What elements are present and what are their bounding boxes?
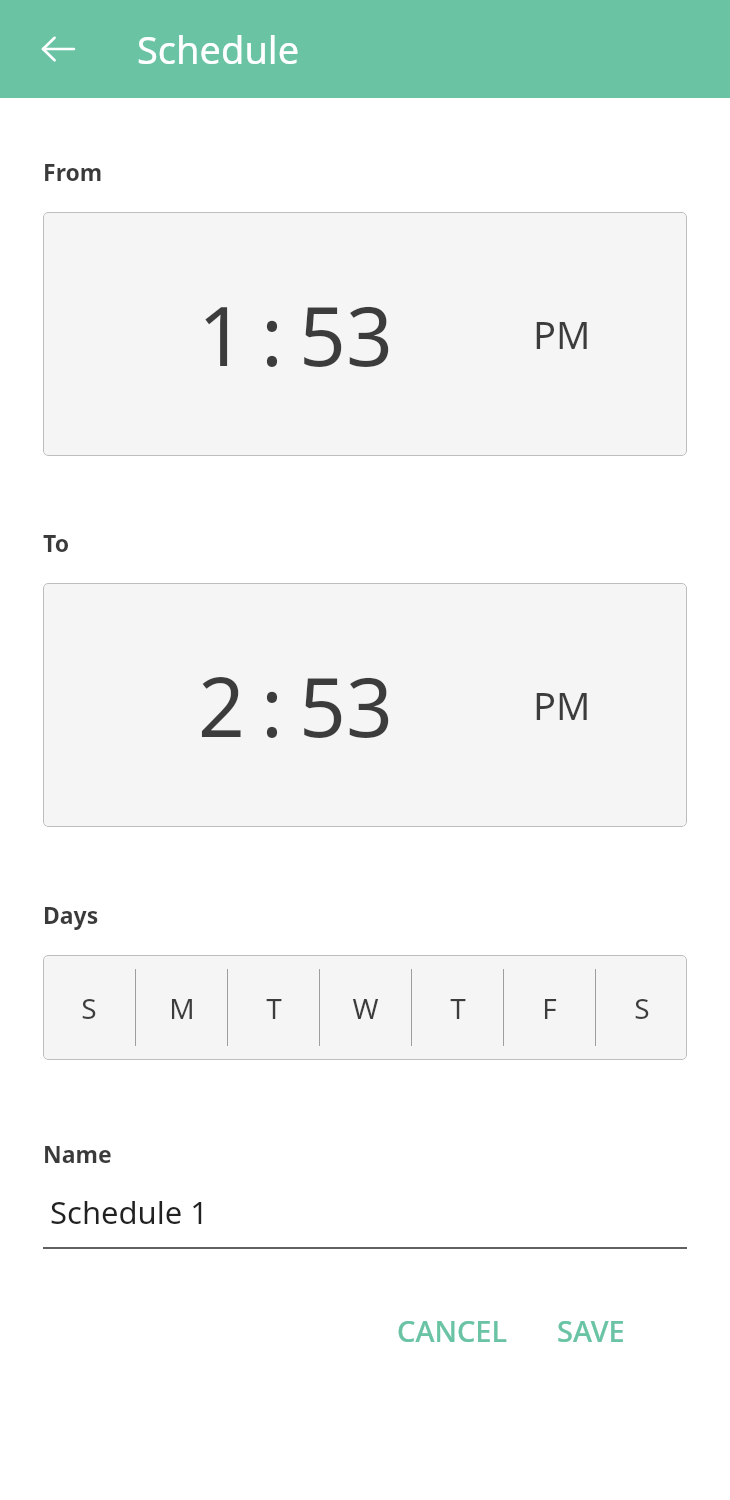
button[interactable]: SAVE	[539, 1297, 643, 1364]
staticText: T	[450, 989, 466, 1027]
staticText: PM	[533, 308, 591, 360]
staticText: S	[634, 989, 650, 1027]
button[interactable]: W	[320, 955, 411, 1060]
staticText: W	[352, 989, 379, 1027]
staticText: F	[542, 989, 557, 1027]
staticText: T	[266, 989, 282, 1027]
staticText: 1	[198, 278, 245, 390]
staticText: PM	[533, 679, 591, 731]
button[interactable]: Schedule 1	[43, 1191, 687, 1249]
staticText: To	[43, 527, 70, 558]
staticText: 2	[198, 649, 245, 761]
staticText: Schedule 1	[50, 1191, 209, 1233]
button[interactable]: 2	[43, 583, 687, 827]
button[interactable]: Back	[28, 19, 88, 79]
button[interactable]: M	[136, 955, 227, 1060]
button[interactable]: S	[596, 955, 687, 1060]
staticText: From	[43, 156, 103, 187]
staticText: Schedule	[137, 23, 300, 75]
staticText: S	[81, 989, 97, 1027]
staticText: 53	[299, 649, 393, 761]
staticText: Name	[43, 1138, 112, 1169]
staticText: CANCEL	[397, 1311, 507, 1350]
button[interactable]: T	[412, 955, 503, 1060]
button[interactable]: CANCEL	[379, 1297, 525, 1364]
button[interactable]: F	[504, 955, 595, 1060]
staticText: :	[261, 649, 283, 761]
button[interactable]: T	[228, 955, 319, 1060]
button[interactable]: 1	[43, 212, 687, 456]
staticText: SAVE	[557, 1311, 625, 1350]
staticText: :	[261, 278, 283, 390]
staticText: Days	[43, 899, 99, 930]
button[interactable]: S	[43, 955, 135, 1060]
staticText: 53	[299, 278, 393, 390]
staticText: M	[169, 989, 195, 1027]
